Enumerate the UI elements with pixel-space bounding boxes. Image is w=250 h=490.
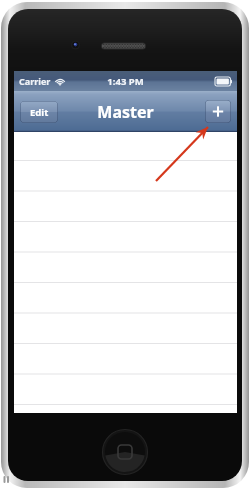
staticText: 1:43 PM <box>107 75 144 88</box>
button[interactable] <box>14 318 237 349</box>
button[interactable]: Add <box>205 100 231 123</box>
button[interactable] <box>14 132 237 163</box>
button[interactable] <box>14 380 237 411</box>
staticText: Master <box>97 101 154 123</box>
staticText: Carrier <box>19 75 51 87</box>
button[interactable]: Edit <box>20 101 58 123</box>
button[interactable] <box>14 194 237 225</box>
button[interactable] <box>14 225 237 256</box>
button[interactable] <box>14 287 237 318</box>
staticText: Edit <box>30 106 49 119</box>
button[interactable] <box>14 349 237 380</box>
button[interactable] <box>14 256 237 287</box>
button[interactable] <box>14 163 237 194</box>
